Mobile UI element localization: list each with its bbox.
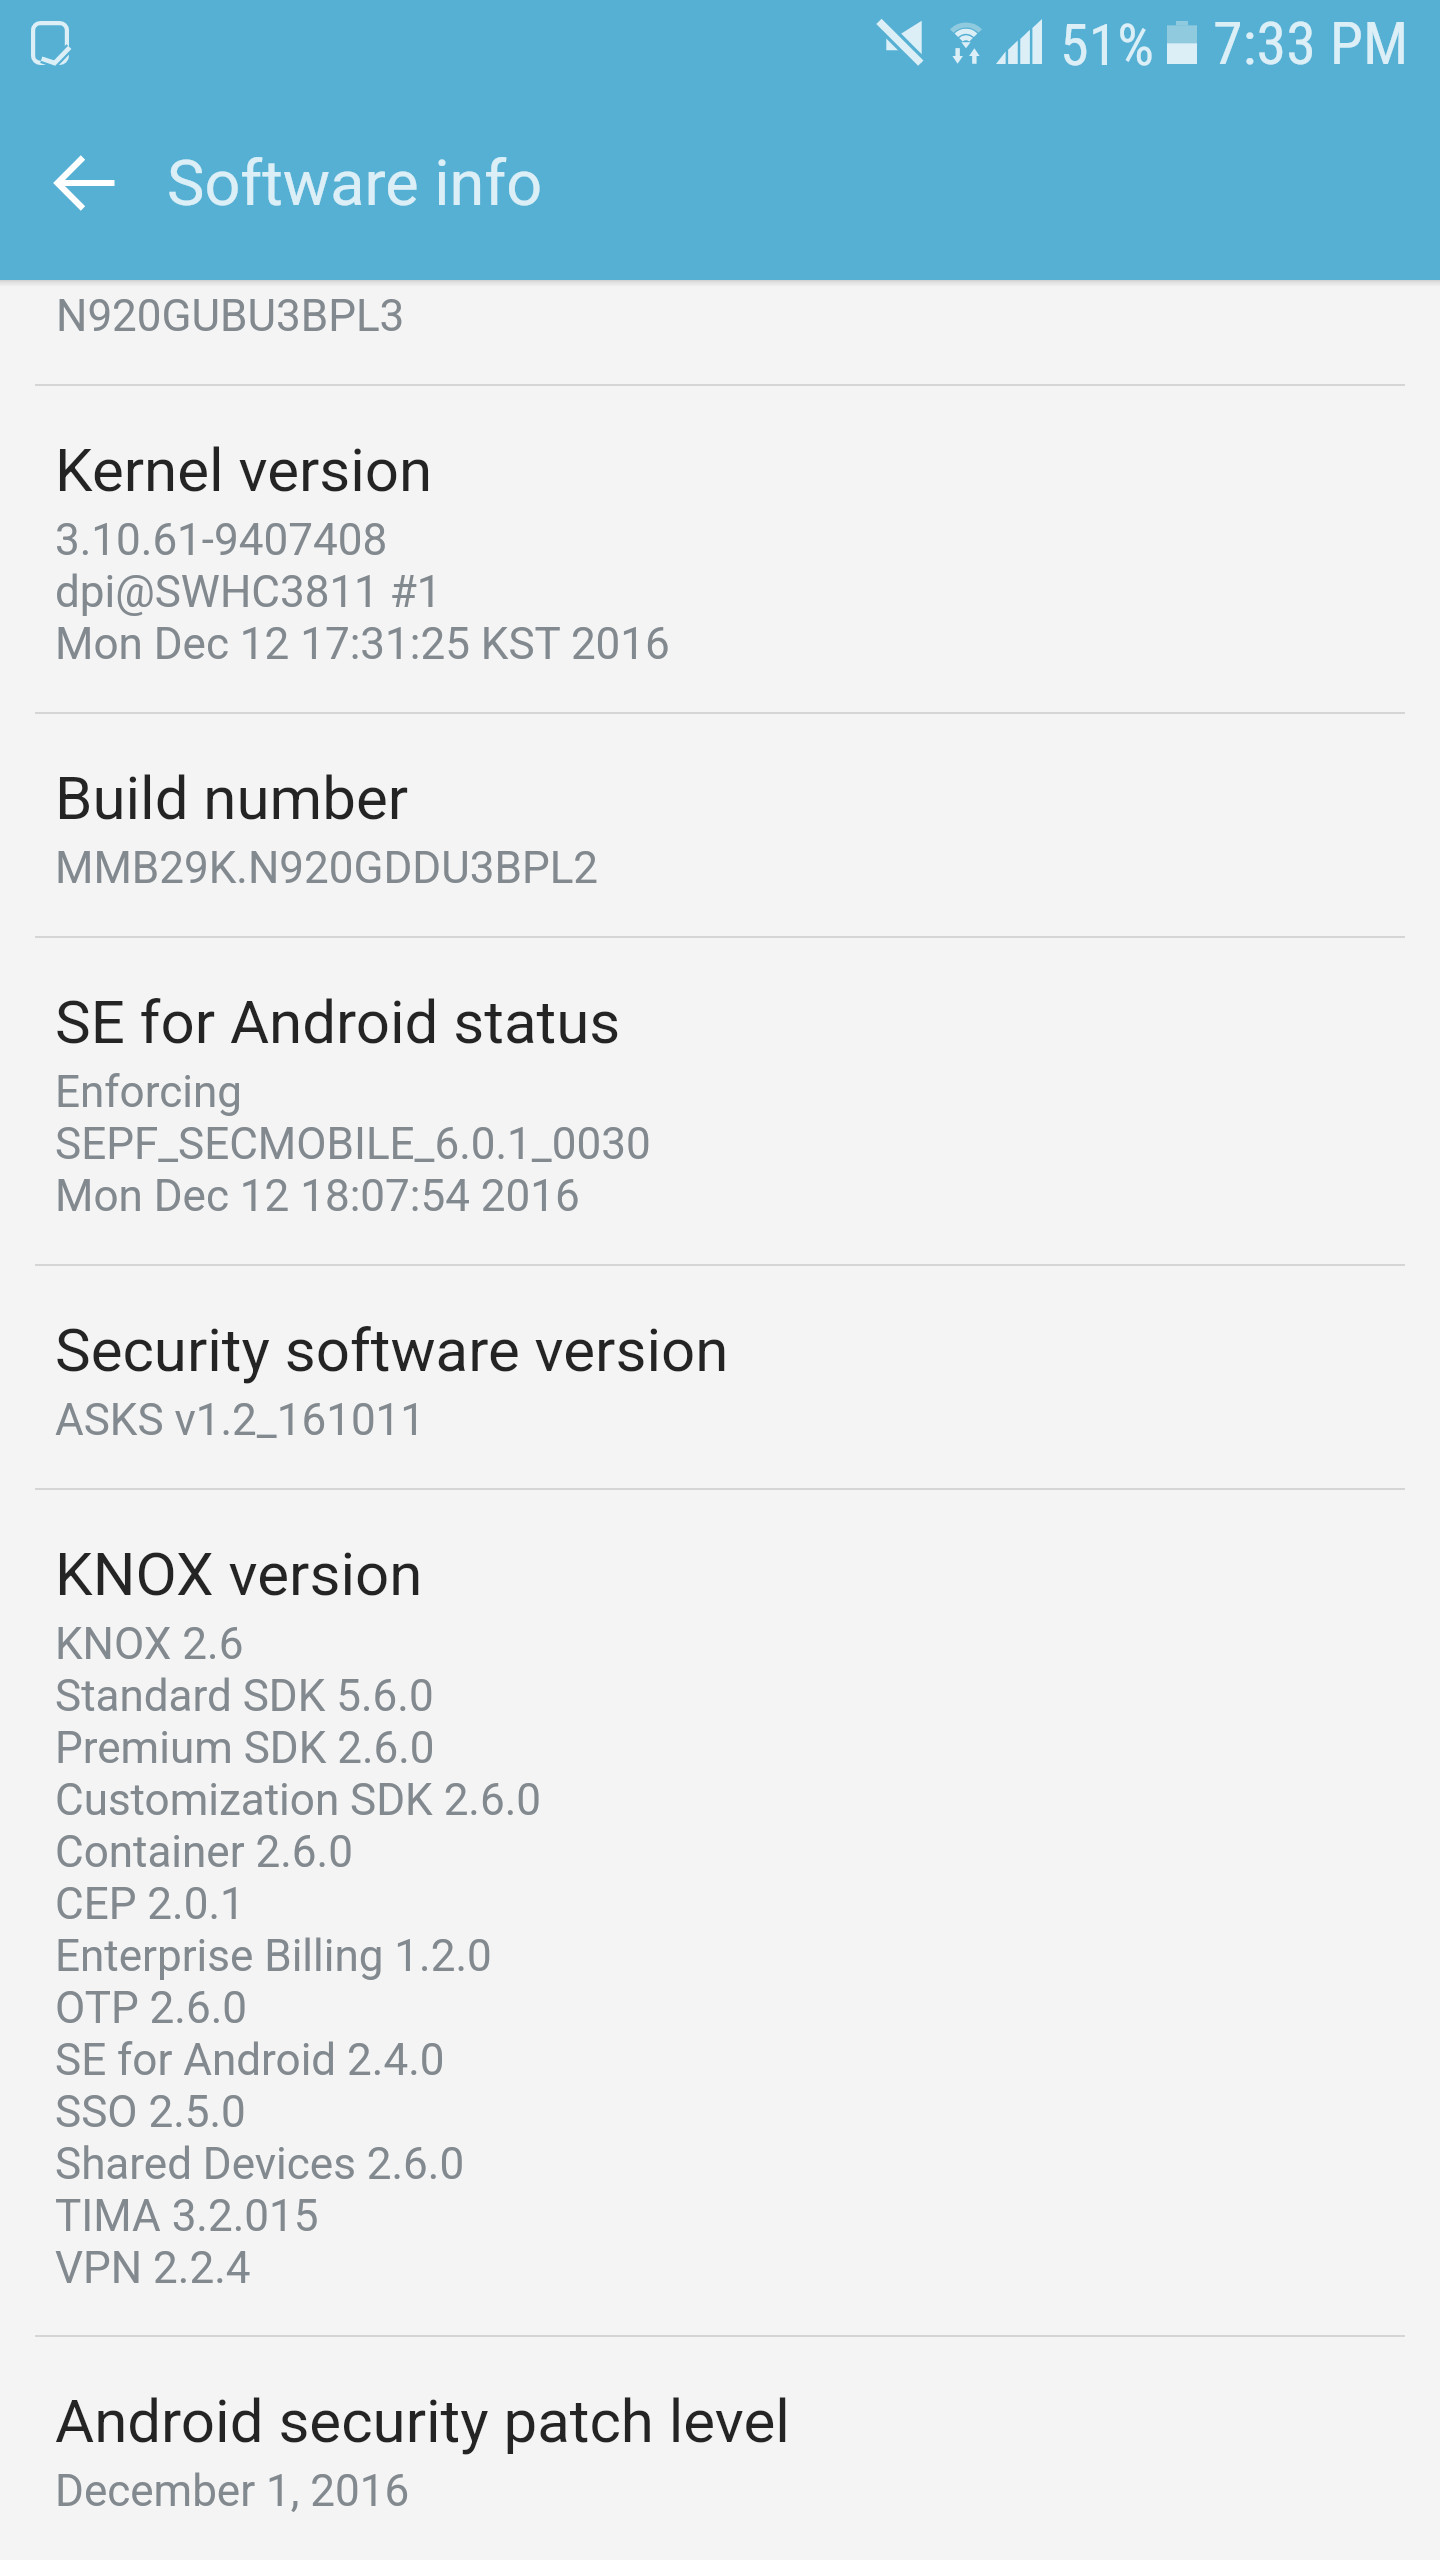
staticText: Android security patch level: [55, 2387, 790, 2457]
button[interactable]: Kernel version: [0, 385, 1440, 713]
staticText: 3.10.61-9407408 dpi@SWHC3811 #1 Mon Dec …: [55, 514, 670, 670]
staticText: Enforcing SEPF_SECMOBILE_6.0.1_0030 Mon …: [55, 1066, 651, 1222]
button[interactable]: Android security patch level: [0, 2336, 1440, 2560]
button[interactable]: Navigate up: [32, 129, 140, 237]
staticText: Software info: [167, 146, 543, 220]
staticText: KNOX version: [55, 1540, 423, 1610]
staticText: Kernel version: [55, 436, 433, 506]
staticText: N920GUBU3BPL3: [56, 290, 405, 342]
button[interactable]: Security software version: [0, 1265, 1440, 1489]
staticText: MMB29K.N920GDDU3BPL2: [55, 842, 599, 894]
button[interactable]: SE for Android status: [0, 937, 1440, 1265]
staticText: December 1, 2016: [55, 2465, 410, 2517]
button[interactable]: KNOX version: [0, 1489, 1440, 2336]
staticText: 7:33 PM: [1213, 10, 1409, 78]
button[interactable]: N920GUBU3BPL3: [0, 280, 1440, 385]
staticText: ASKS v1.2_161011: [55, 1394, 426, 1446]
staticText: Security software version: [55, 1316, 729, 1386]
staticText: 51%: [1060, 11, 1154, 79]
staticText: Build number: [55, 764, 409, 834]
staticText: KNOX 2.6 Standard SDK 5.6.0 Premium SDK …: [55, 1618, 542, 2294]
staticText: SE for Android status: [55, 988, 621, 1058]
button[interactable]: Build number: [0, 713, 1440, 937]
